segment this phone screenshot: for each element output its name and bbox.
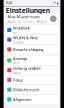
staticText: Anzeige <box>13 56 27 61</box>
button[interactable]: Max Mustermann <box>5 14 59 24</box>
staticText: ••• ▮ <box>53 1 58 5</box>
staticText: Zuhause <box>13 41 25 44</box>
button[interactable]: WLAN & Netz <box>5 35 59 44</box>
staticText: Benachrichtigung <box>13 47 43 52</box>
button[interactable]: Benachrichtigung <box>5 45 59 54</box>
staticText: Allgemein <box>13 97 31 102</box>
button[interactable]: Mobilfunk <box>5 25 59 35</box>
staticText: Eigen <box>13 71 21 75</box>
button[interactable]: Allgemein <box>5 95 59 104</box>
button[interactable]: Hintergrundbild <box>5 65 59 75</box>
staticText: Max Mustermann <box>7 14 39 19</box>
staticText: 9:41 <box>6 1 13 5</box>
staticText: Apple-ID, iCloud+, Medien <box>7 20 47 23</box>
staticText: WLAN & Netz <box>13 35 38 40</box>
staticText: Mobilfunk <box>13 25 30 31</box>
staticText: Hell <box>13 61 19 65</box>
staticText: Einstellungen <box>6 6 50 15</box>
button[interactable]: Bildschirmzeit <box>5 85 59 94</box>
staticText: Fokus <box>13 77 23 82</box>
staticText: Hintergrundbild <box>13 66 40 71</box>
button[interactable]: Fokus <box>5 75 59 85</box>
button[interactable]: Anzeige <box>5 56 59 65</box>
staticText: Bildschirmzeit <box>13 87 39 92</box>
staticText: Ein <box>13 31 17 34</box>
